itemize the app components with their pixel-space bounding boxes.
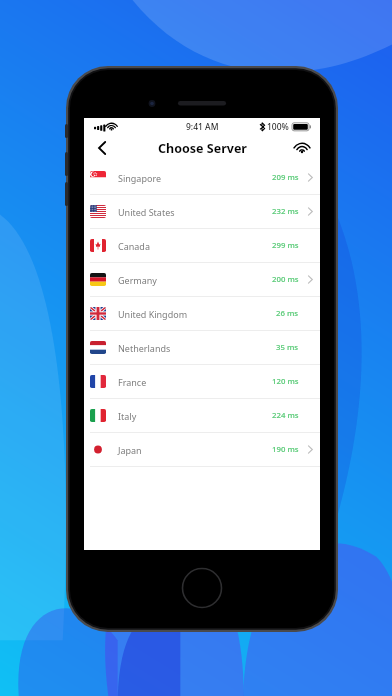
staticText: 120 ms xyxy=(272,376,299,387)
staticText: Singapore xyxy=(118,172,162,184)
staticText: 190 ms xyxy=(272,444,299,455)
staticText: 100% xyxy=(267,121,289,133)
button[interactable]: Canada xyxy=(84,229,320,263)
button[interactable]: Back xyxy=(88,135,116,161)
button[interactable]: Italy xyxy=(84,399,320,433)
button[interactable]: Japan xyxy=(84,433,320,467)
staticText: United Kingdom xyxy=(118,308,188,320)
staticText: Canada xyxy=(118,240,150,252)
button[interactable]: France xyxy=(84,365,320,399)
staticText: France xyxy=(118,376,147,388)
staticText: 35 ms xyxy=(276,342,299,353)
button[interactable]: Connection status xyxy=(288,135,316,161)
staticText: Italy xyxy=(118,410,137,422)
staticText: 209 ms xyxy=(272,172,299,183)
button[interactable]: Germany xyxy=(84,263,320,297)
staticText: United States xyxy=(118,206,175,218)
staticText: 232 ms xyxy=(272,206,299,217)
button[interactable]: United Kingdom xyxy=(84,297,320,331)
button[interactable]: Singapore xyxy=(84,161,320,195)
staticText: Japan xyxy=(118,444,142,456)
staticText: Germany xyxy=(118,274,157,286)
staticText: 224 ms xyxy=(272,410,299,421)
button[interactable]: United States xyxy=(84,195,320,229)
button[interactable]: Netherlands xyxy=(84,331,320,365)
staticText: 26 ms xyxy=(276,308,299,319)
staticText: Netherlands xyxy=(118,342,171,354)
staticText: 200 ms xyxy=(272,274,299,285)
staticText: 9:41 AM xyxy=(186,121,219,133)
staticText: Choose Server xyxy=(158,140,247,157)
staticText: 299 ms xyxy=(272,240,299,251)
